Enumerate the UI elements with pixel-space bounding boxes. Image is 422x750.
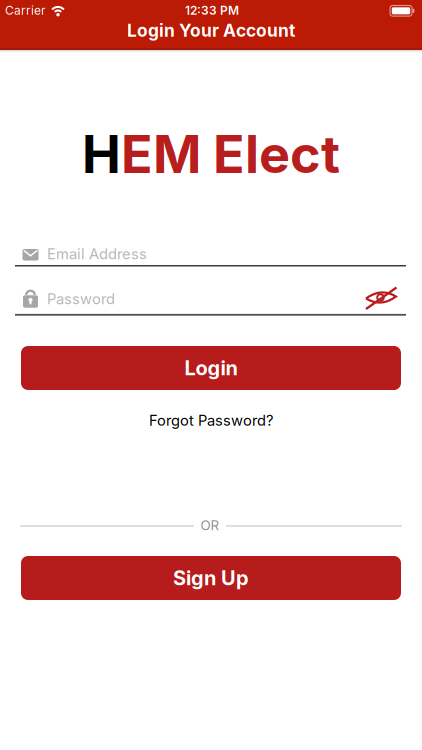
- button[interactable]: Sign Up: [21, 556, 401, 600]
- staticText: Forgot Password?: [149, 412, 273, 429]
- button[interactable]: Password: [15, 284, 406, 316]
- staticText: Email Address: [47, 245, 147, 263]
- staticText: Password: [47, 290, 115, 308]
- staticText: H: [82, 123, 121, 185]
- button[interactable]: Login: [21, 346, 401, 390]
- staticText: Carrier: [5, 3, 46, 18]
- staticText: Login: [184, 356, 237, 380]
- staticText: OR: [200, 518, 219, 533]
- button[interactable]: Forgot Password?: [149, 412, 273, 429]
- button[interactable]: Email Address: [15, 243, 406, 266]
- staticText: Login Your Account: [127, 20, 295, 41]
- staticText: 12:33 PM: [185, 3, 239, 18]
- button[interactable]: Show password: [363, 285, 399, 311]
- staticText: EM Elect: [121, 123, 340, 185]
- staticText: Sign Up: [173, 566, 249, 590]
